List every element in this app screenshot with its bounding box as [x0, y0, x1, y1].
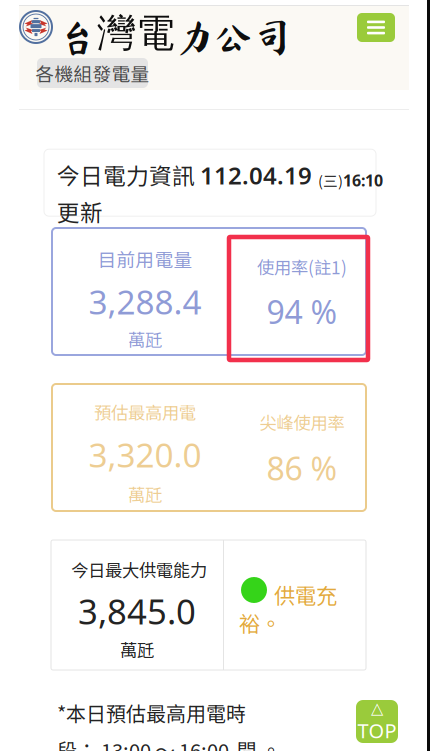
staticText: 裕。 — [239, 607, 281, 638]
staticText: 萬瓩 — [128, 327, 162, 352]
staticText: 3,320.0 — [88, 432, 201, 477]
staticText: 各機組發電量 — [35, 59, 149, 86]
staticText: *本日預估最高用電時 — [57, 698, 246, 727]
staticText: 預估最高用電 — [94, 399, 196, 424]
button[interactable]: Back to top — [356, 700, 398, 743]
staticText: 使用率(註1) — [257, 254, 347, 279]
staticText: 萬瓩 — [120, 637, 154, 662]
button[interactable]: 各機組發電量 — [37, 58, 148, 88]
staticText: 94 % — [266, 290, 337, 333]
staticText: 台灣電力公司 — [58, 9, 292, 58]
staticText: 更新 — [57, 195, 103, 228]
staticText: 112.04.19 — [200, 159, 318, 191]
staticText: 今日電力資訊 — [57, 158, 200, 191]
staticText: TOP — [357, 717, 396, 744]
staticText: 今日最大供電能力 — [71, 557, 207, 582]
staticText: 供電充 — [274, 579, 337, 610]
staticText: 86 % — [266, 447, 337, 489]
staticText: 3,288.4 — [88, 279, 201, 324]
staticText: 段： 13:00 〜 16:00 間 。 — [57, 735, 281, 751]
staticText: 萬瓩 — [128, 482, 162, 507]
staticText: 16:10 — [343, 170, 383, 191]
staticText: △ — [371, 699, 383, 717]
staticText: 3,845.0 — [78, 588, 196, 634]
staticText: 尖峰使用率 — [259, 410, 344, 435]
button[interactable]: Menu — [357, 13, 395, 42]
staticText: 目前用電量 — [97, 245, 192, 272]
staticText: (三) — [318, 170, 343, 191]
